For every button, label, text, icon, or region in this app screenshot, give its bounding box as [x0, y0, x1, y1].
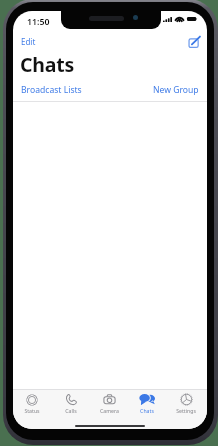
- staticText: Chats: [140, 407, 154, 414]
- staticText: Settings: [176, 407, 196, 414]
- staticText: Camera: [100, 407, 119, 414]
- button[interactable]: Broadcast Lists: [21, 84, 82, 96]
- button[interactable]: Status: [14, 390, 50, 414]
- button[interactable]: Camera: [91, 390, 127, 414]
- staticText: Chats: [20, 51, 75, 78]
- staticText: Edit: [21, 36, 36, 47]
- button[interactable]: New chat: [188, 35, 201, 48]
- staticText: 11:50: [27, 16, 50, 28]
- staticText: Status: [24, 407, 40, 414]
- button[interactable]: New Group: [153, 84, 199, 96]
- staticText: Calls: [65, 407, 77, 414]
- button[interactable]: Calls: [53, 390, 89, 414]
- button[interactable]: Edit: [18, 34, 39, 49]
- button[interactable]: Chats: [129, 390, 165, 414]
- staticText: New Group: [153, 84, 199, 96]
- button[interactable]: Settings: [168, 390, 204, 414]
- staticText: Broadcast Lists: [21, 84, 82, 96]
